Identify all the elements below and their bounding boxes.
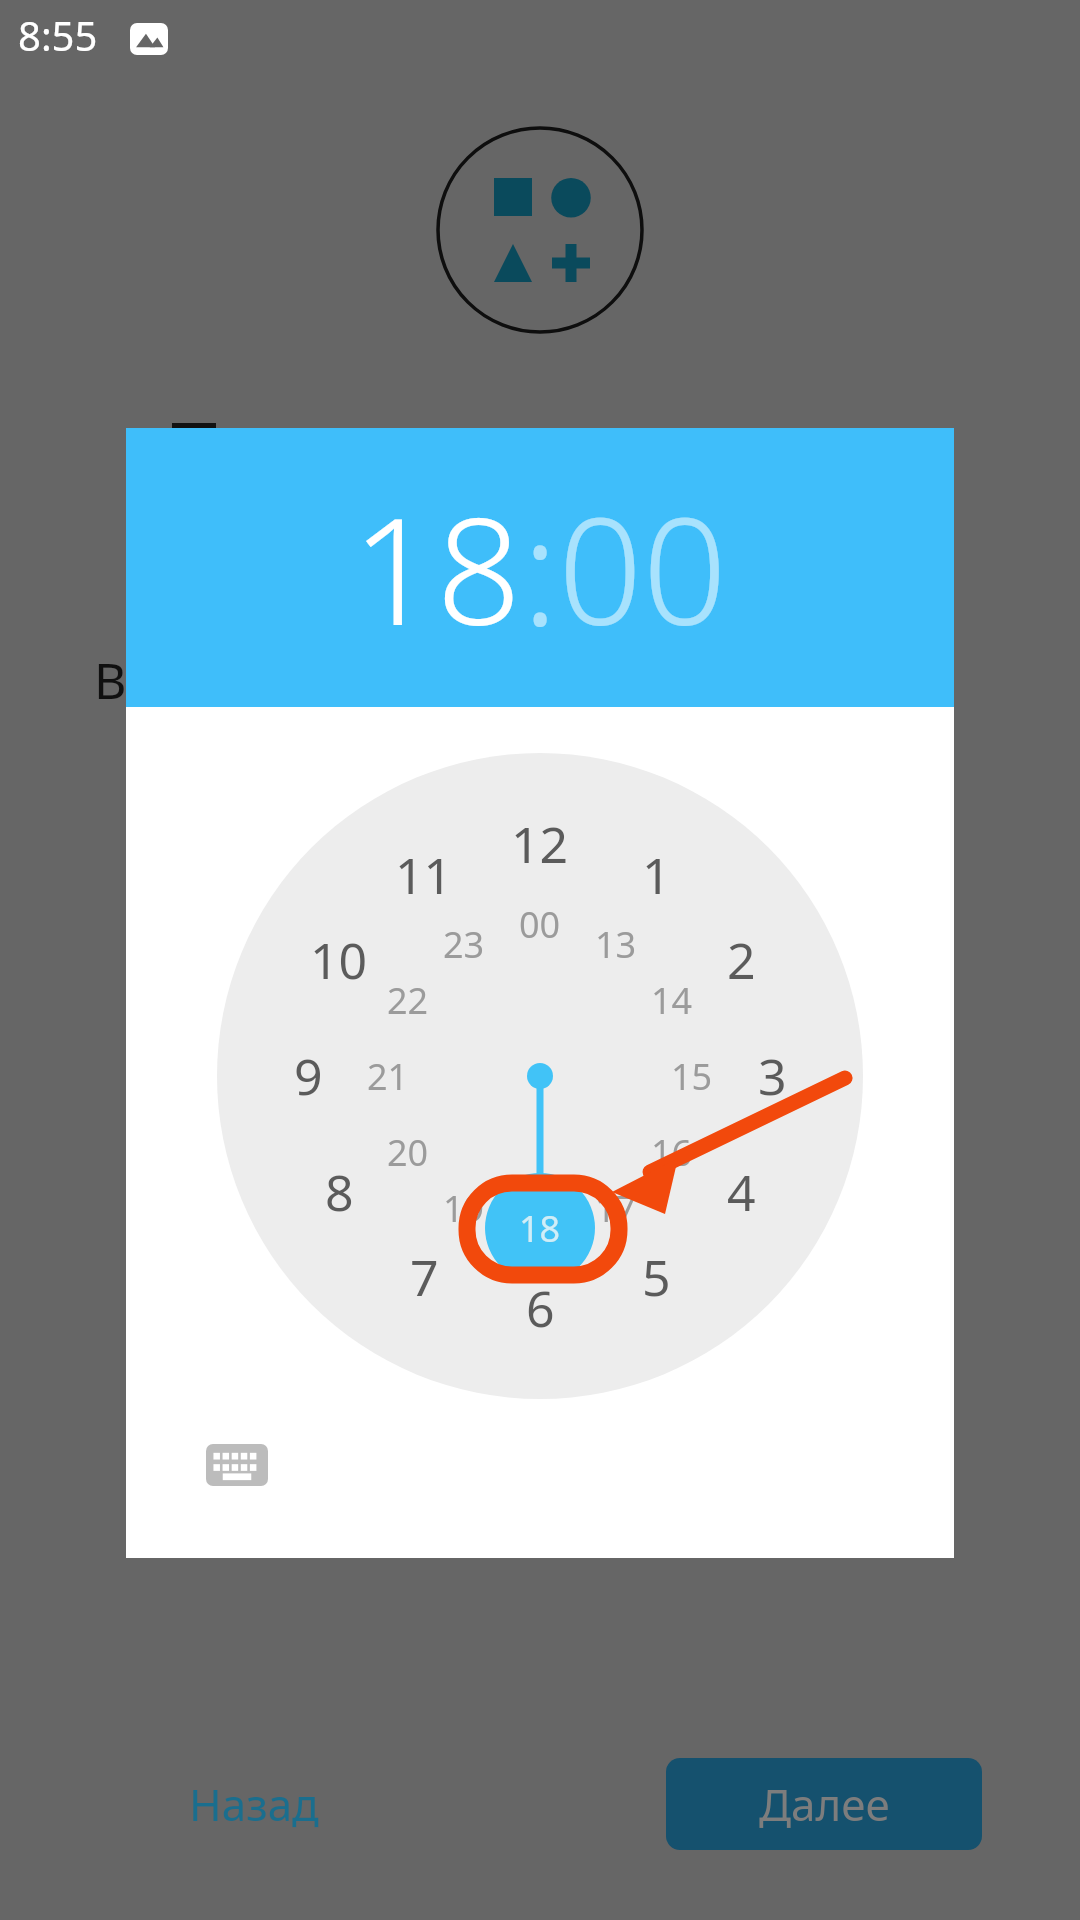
staticText: 10: [310, 926, 368, 994]
staticText: 18: [519, 1204, 561, 1253]
staticText: 16: [651, 1128, 693, 1177]
staticText: 7: [410, 1243, 439, 1311]
staticText: 2: [727, 926, 756, 994]
staticText: В: [94, 646, 127, 714]
staticText: 18: [352, 467, 522, 669]
staticText: 22: [387, 976, 429, 1025]
staticText: :00: [522, 467, 728, 669]
staticText: 13: [595, 920, 637, 969]
staticText: 19: [443, 1184, 485, 1233]
staticText: 18: [519, 1204, 561, 1253]
staticText: Назад: [189, 1774, 319, 1834]
staticText: 15: [671, 1052, 713, 1101]
staticText: 6: [526, 1274, 555, 1342]
staticText: 00: [519, 900, 561, 949]
button[interactable]: Switch to keyboard input: [200, 1438, 274, 1492]
staticText: 1: [642, 841, 671, 909]
staticText: 12: [511, 810, 569, 878]
staticText: 23: [443, 920, 485, 969]
staticText: 8: [325, 1158, 354, 1226]
staticText: 9: [294, 1042, 323, 1110]
staticText: 20: [387, 1128, 429, 1177]
staticText: 14: [651, 976, 693, 1025]
button[interactable]: Назад: [148, 1758, 360, 1850]
staticText: 21: [367, 1052, 409, 1101]
staticText: 4: [727, 1158, 756, 1226]
staticText: 8:55: [18, 8, 98, 62]
other: Screenshot indicator: [130, 20, 168, 58]
staticText: 17: [595, 1184, 637, 1233]
staticText: 11: [395, 841, 453, 909]
button[interactable]: Далее: [666, 1758, 982, 1850]
staticText: Далее: [759, 1774, 890, 1834]
button[interactable]: 18: [126, 428, 954, 707]
staticText: 5: [642, 1243, 671, 1311]
staticText: 3: [758, 1042, 787, 1110]
